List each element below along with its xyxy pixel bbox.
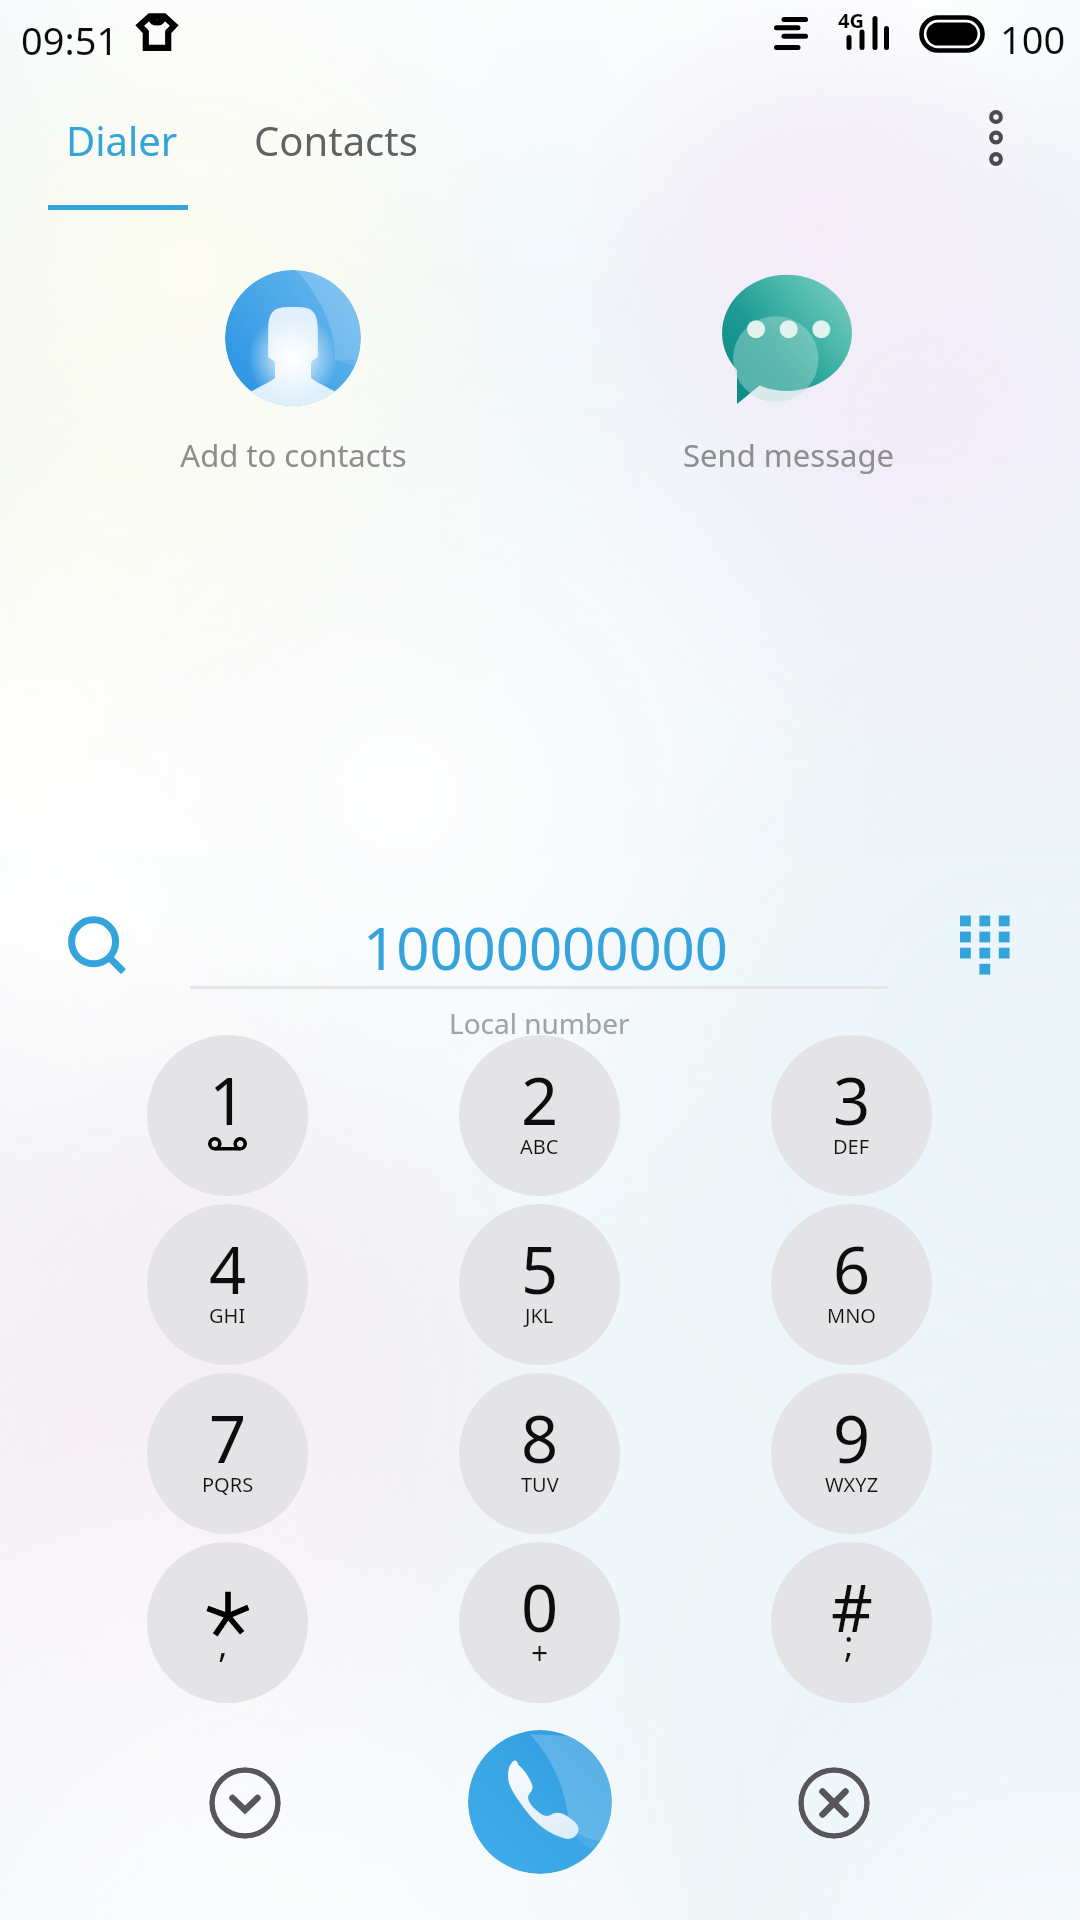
- staticText: Dialer: [66, 113, 178, 167]
- button[interactable]: Send message: [650, 262, 926, 477]
- staticText: Local number: [449, 1004, 630, 1042]
- staticText: PQRS: [202, 1471, 254, 1498]
- button[interactable]: #: [771, 1542, 932, 1703]
- button[interactable]: 8: [459, 1373, 620, 1534]
- staticText: 09:51: [21, 14, 119, 66]
- button[interactable]: 1: [147, 1035, 308, 1196]
- button[interactable]: Dialer: [48, 104, 188, 210]
- button[interactable]: 7: [147, 1373, 308, 1534]
- button[interactable]: 4: [147, 1204, 308, 1365]
- staticText: Send message: [683, 434, 894, 476]
- button[interactable]: 5: [459, 1204, 620, 1365]
- staticText: 1: [209, 1056, 247, 1145]
- staticText: 0: [521, 1563, 559, 1652]
- button[interactable]: ,: [147, 1542, 308, 1703]
- staticText: ,: [218, 1619, 228, 1668]
- staticText: #: [831, 1563, 873, 1652]
- button[interactable]: Add to contacts: [155, 262, 431, 477]
- staticText: TUV: [521, 1471, 559, 1498]
- button[interactable]: More options: [952, 94, 1040, 182]
- staticText: 2: [521, 1056, 559, 1145]
- staticText: Add to contacts: [180, 434, 407, 476]
- button[interactable]: Hide keypad: [209, 1767, 281, 1839]
- button[interactable]: Contacts: [234, 104, 434, 196]
- button[interactable]: 2: [459, 1035, 620, 1196]
- staticText: MNO: [827, 1302, 876, 1329]
- staticText: +: [531, 1632, 549, 1673]
- staticText: 3: [833, 1056, 871, 1145]
- staticText: 9: [833, 1394, 871, 1483]
- staticText: 10000000000: [363, 908, 728, 987]
- staticText: Contacts: [254, 113, 418, 167]
- button[interactable]: 0: [459, 1542, 620, 1703]
- button[interactable]: 6: [771, 1204, 932, 1365]
- staticText: 4G: [838, 7, 864, 34]
- button[interactable]: Keypad: [940, 900, 1020, 980]
- staticText: 100: [1000, 13, 1066, 65]
- staticText: ;: [844, 1619, 854, 1668]
- staticText: 5: [521, 1225, 559, 1314]
- staticText: DEF: [833, 1133, 870, 1160]
- staticText: ABC: [520, 1133, 559, 1160]
- staticText: JKL: [525, 1302, 554, 1329]
- button[interactable]: 9: [771, 1373, 932, 1534]
- staticText: 7: [209, 1394, 247, 1483]
- button[interactable]: Call: [468, 1730, 612, 1874]
- button[interactable]: 3: [771, 1035, 932, 1196]
- staticText: WXYZ: [825, 1471, 879, 1498]
- staticText: 4: [209, 1225, 247, 1314]
- staticText: 8: [521, 1394, 559, 1483]
- staticText: GHI: [209, 1302, 246, 1329]
- staticText: 6: [833, 1225, 871, 1314]
- button[interactable]: Clear: [798, 1767, 870, 1839]
- button[interactable]: Search: [52, 900, 136, 984]
